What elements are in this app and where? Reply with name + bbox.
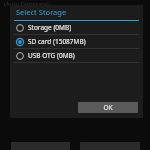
staticText: SD card (15087MB) <box>28 37 86 46</box>
button[interactable]: Storage (0MB) <box>10 21 143 34</box>
staticText: Storage (0MB) <box>28 23 72 32</box>
staticText: Select Storage <box>16 7 67 17</box>
button[interactable]: SD card (15087MB) <box>10 35 143 48</box>
button[interactable]: OK <box>78 102 138 113</box>
staticText: USB OTG (0MB) <box>28 51 75 60</box>
staticText: (Auto Generate) <box>4 0 49 8</box>
button[interactable]: USB OTG (0MB) <box>10 49 143 62</box>
staticText: OK <box>103 103 113 112</box>
